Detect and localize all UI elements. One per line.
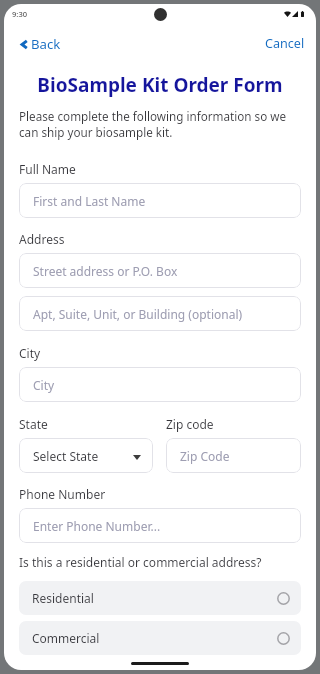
staticText: Enter Phone Number...: [33, 518, 161, 534]
staticText: Cancel: [265, 35, 305, 52]
staticText: Select State: [33, 448, 99, 464]
staticText: First and Last Name: [33, 193, 146, 209]
button[interactable]: Apt, Suite, Unit, or Building (optional): [19, 296, 301, 331]
button[interactable]: Back: [16, 31, 69, 57]
button[interactable]: Select State: [19, 438, 153, 473]
staticText: Commercial: [32, 630, 100, 646]
staticText: Apt, Suite, Unit, or Building (optional): [33, 306, 243, 322]
button[interactable]: Cancel: [253, 31, 316, 56]
staticText: Back: [31, 35, 61, 53]
button[interactable]: Enter Phone Number...: [19, 508, 301, 543]
button[interactable]: Residential: [19, 581, 301, 615]
staticText: Residential: [32, 590, 94, 606]
other: Select Commercial: [277, 632, 290, 645]
staticText: Zip code: [166, 416, 214, 432]
staticText: City: [19, 345, 41, 361]
staticText: Is this a residential or commercial addr…: [19, 554, 262, 570]
staticText: BioSample Kit Order Form: [19, 72, 301, 98]
button[interactable]: City: [19, 367, 301, 402]
staticText: Zip Code: [180, 448, 230, 464]
staticText: Street address or P.O. Box: [33, 263, 178, 279]
staticText: Phone Number: [19, 486, 106, 502]
staticText: Please complete the following informatio…: [19, 108, 301, 140]
staticText: Full Name: [19, 161, 76, 177]
staticText: State: [19, 416, 48, 432]
staticText: City: [33, 377, 55, 393]
button[interactable]: Street address or P.O. Box: [19, 253, 301, 288]
other: Select Residential: [277, 592, 290, 605]
button[interactable]: Zip Code: [166, 438, 301, 473]
staticText: Address: [19, 231, 65, 247]
button[interactable]: First and Last Name: [19, 183, 301, 218]
button[interactable]: Commercial: [19, 621, 301, 655]
staticText: 9:30: [12, 9, 28, 19]
